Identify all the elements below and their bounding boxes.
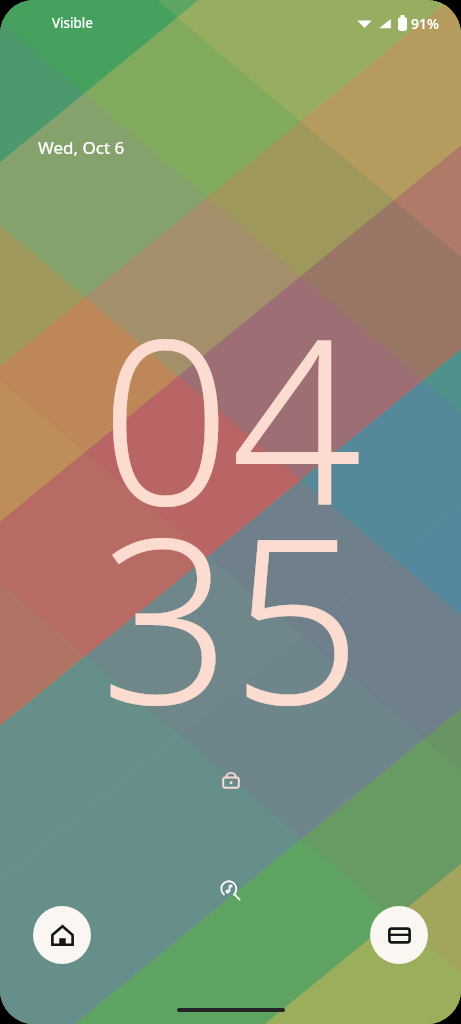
- button[interactable]: Wallet: [370, 906, 428, 964]
- staticText: Wed, Oct 6: [38, 136, 125, 159]
- button[interactable]: Home: [33, 906, 91, 964]
- button[interactable]: Now Playing: [220, 880, 241, 901]
- staticText: Visible: [52, 14, 93, 32]
- staticText: 04: [100, 260, 362, 572]
- staticText: 35: [100, 459, 362, 771]
- other: Locked: [218, 766, 244, 792]
- staticText: 91%: [411, 14, 439, 33]
